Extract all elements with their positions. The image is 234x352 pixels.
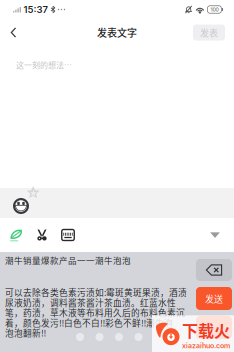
staticText: 可以去除各类色素污渍如:霉斑黄斑果渍，酒渍 bbox=[5, 286, 187, 299]
button[interactable]: 发表 bbox=[193, 24, 225, 40]
staticText: 发表 bbox=[200, 26, 218, 39]
staticText: 下载火 bbox=[182, 318, 230, 342]
staticText: 发送 bbox=[205, 292, 223, 305]
staticText: 这一刻的想法… bbox=[16, 59, 72, 71]
button[interactable]: 键盘 bbox=[55, 218, 81, 252]
button[interactable]: 剪贴板内容 bbox=[0, 253, 234, 267]
staticText: 潮牛销量爆款产品一一潮牛泡泡 bbox=[5, 254, 131, 266]
button[interactable]: 返回 bbox=[0, 19, 27, 46]
staticText: 泡泡翻新‼ bbox=[5, 326, 46, 339]
staticText: 着，颜色发污‼白色不白‼彩色不鲜‼潮牛泡 bbox=[5, 316, 173, 329]
button[interactable]: 手写 bbox=[3, 218, 29, 252]
button[interactable]: 换行 bbox=[196, 316, 232, 339]
button[interactable]: 剪贴板 bbox=[29, 218, 55, 252]
staticText: xiazaihuo.com bbox=[182, 341, 230, 350]
staticText: 100 bbox=[210, 6, 218, 13]
staticText: 笔，药渍，草木液等布料用久后的布料色素沉 bbox=[5, 306, 185, 319]
staticText: 尿液奶渍，调料酱茶酱汁茶血渍。红蓝水性 bbox=[5, 296, 176, 309]
staticText: 15:37 bbox=[23, 4, 47, 15]
button[interactable]: 删除 bbox=[196, 259, 232, 281]
button[interactable]: 常用表情 bbox=[13, 188, 43, 218]
staticText: 发表文字 bbox=[97, 25, 137, 40]
button[interactable]: 收起键盘 bbox=[202, 218, 228, 252]
button[interactable]: 发送 bbox=[196, 287, 232, 310]
